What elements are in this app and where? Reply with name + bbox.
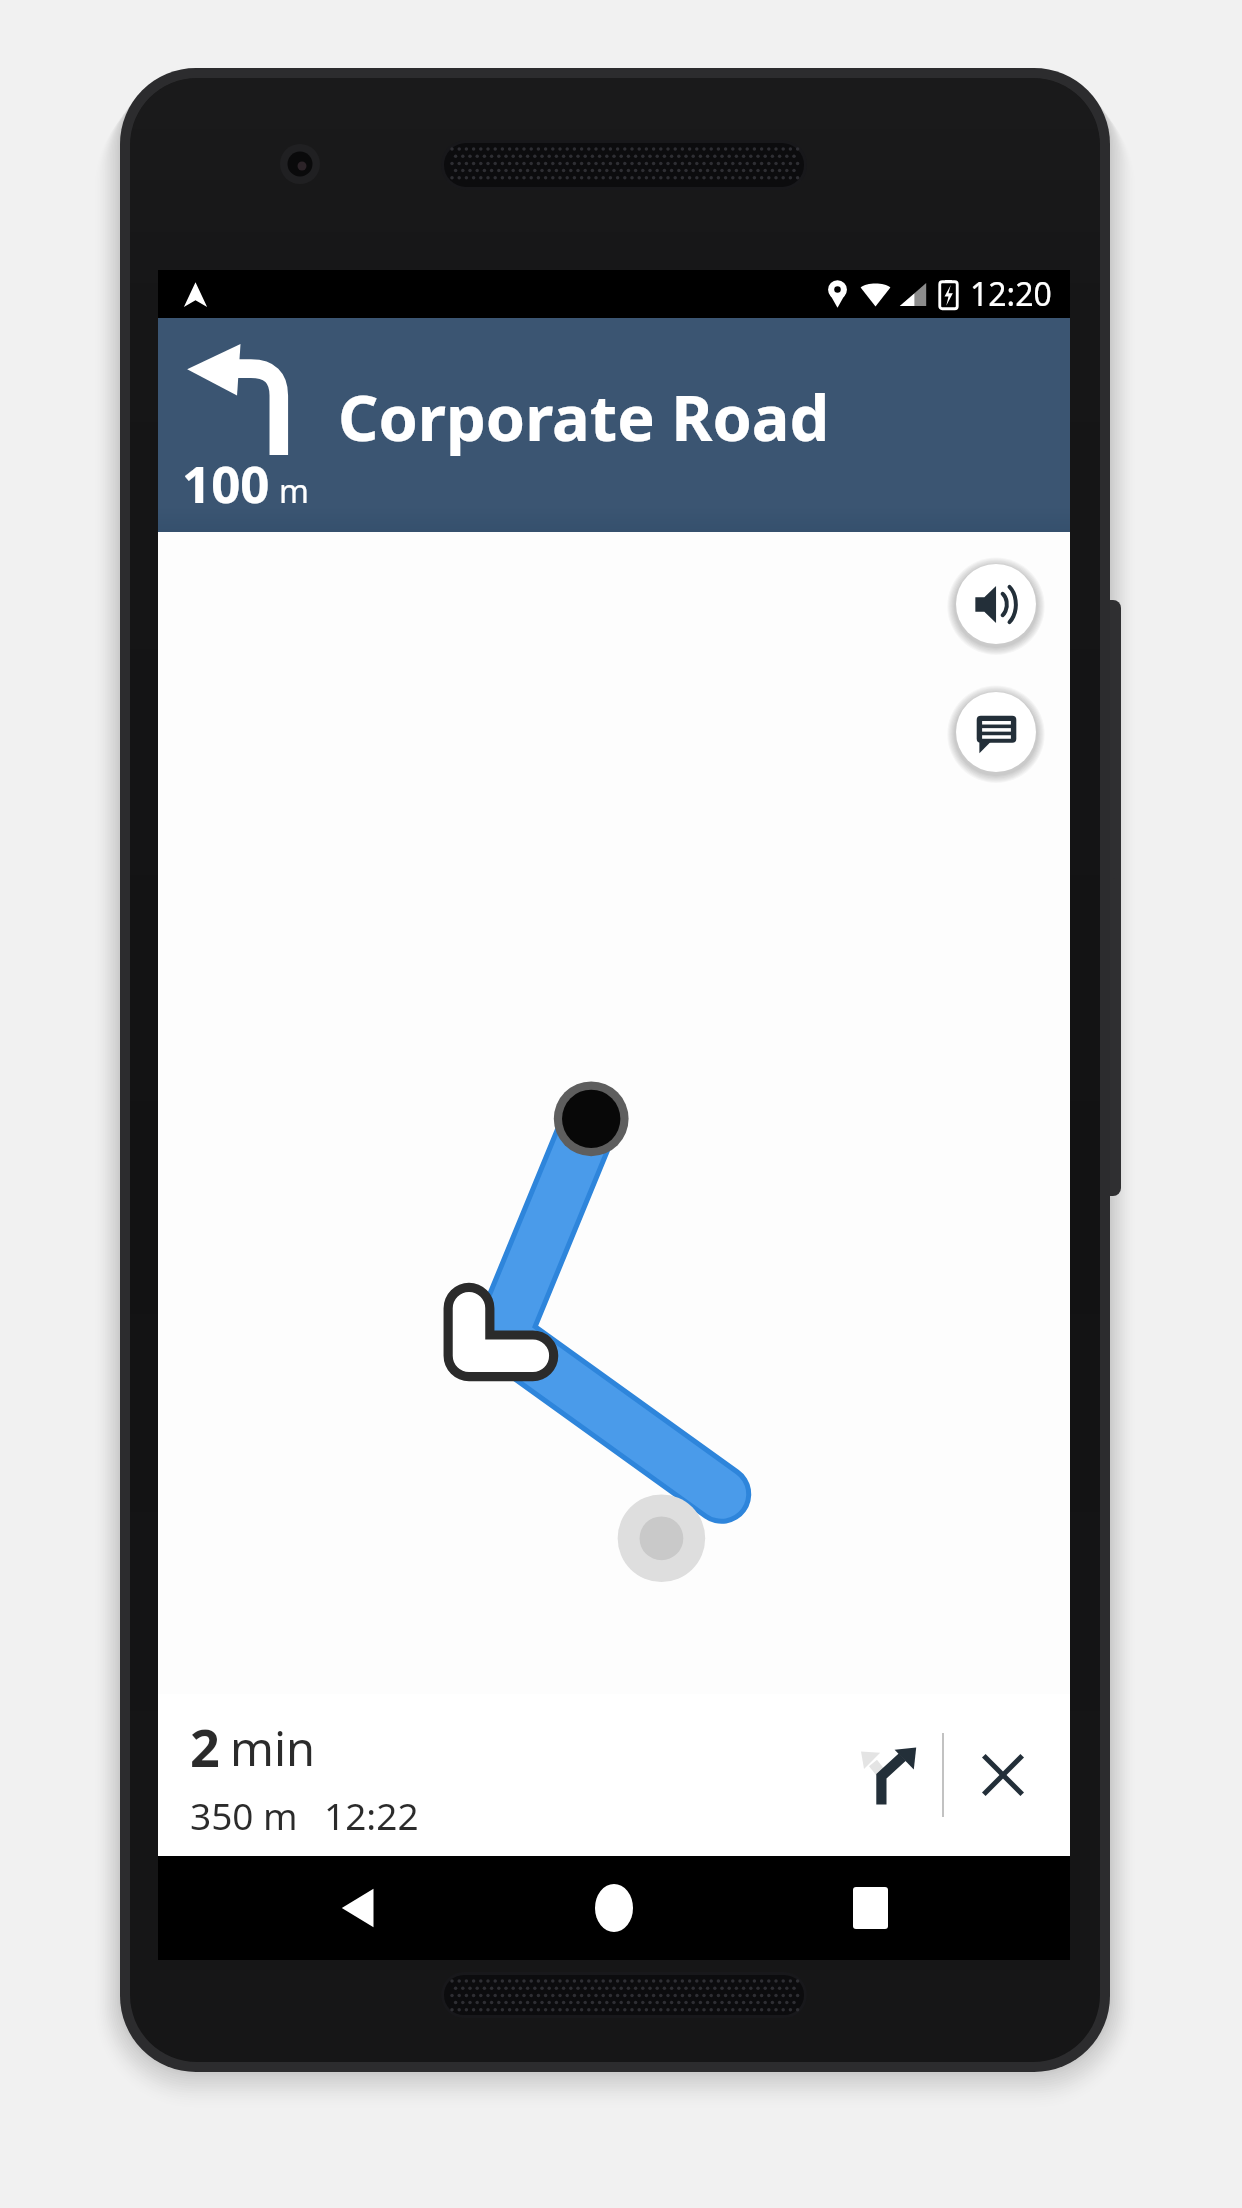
button[interactable]: Mute voice guidance (952, 560, 1040, 648)
staticText: 350 m (190, 1790, 298, 1840)
staticText: 12:20 (970, 272, 1052, 316)
button[interactable]: Back (302, 1856, 414, 1960)
staticText: min (230, 1716, 316, 1780)
staticText: 12:22 (324, 1790, 419, 1840)
button[interactable]: Close navigation (944, 1713, 1062, 1837)
button[interactable]: Home (558, 1856, 670, 1960)
button[interactable]: 100 (158, 318, 1070, 532)
staticText: 100 (182, 448, 270, 517)
staticText: Corporate Road (338, 374, 830, 460)
button[interactable]: Route overview (834, 1713, 942, 1837)
staticText: m (279, 469, 309, 513)
button[interactable]: Recent apps (814, 1856, 926, 1960)
button[interactable]: 2 (190, 1711, 834, 1840)
button[interactable]: Directions list (952, 688, 1040, 776)
staticText: 2 (190, 1711, 220, 1782)
